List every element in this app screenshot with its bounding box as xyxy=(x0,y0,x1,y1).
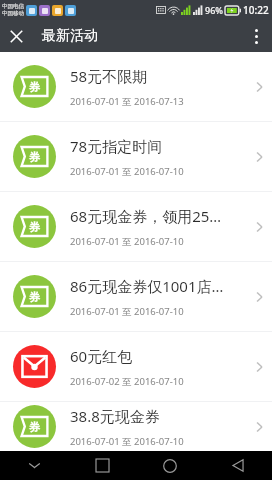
staticText: 58元不限期 xyxy=(70,66,148,86)
staticText: 券 xyxy=(29,150,40,164)
staticText: 68元现金券，领用25… xyxy=(70,206,222,226)
staticText: 2016-07-02 至 2016-07-10 xyxy=(70,375,184,388)
staticText: 2016-07-01 至 2016-07-10 xyxy=(70,165,184,178)
button[interactable]: 60元红包 xyxy=(0,332,272,401)
button[interactable]: Close xyxy=(0,20,32,52)
staticText: 最新活动 xyxy=(42,27,98,45)
staticText: 2016-07-01 至 2016-07-10 xyxy=(70,435,184,448)
staticText: 96% xyxy=(205,4,223,16)
button[interactable]: 券 xyxy=(0,262,272,331)
button[interactable]: More options xyxy=(240,20,272,52)
staticText: 60元红包 xyxy=(70,346,133,366)
staticText: 86元现金券仅1001店… xyxy=(70,276,224,296)
button[interactable]: 券 xyxy=(0,402,272,451)
staticText: 券 xyxy=(29,80,40,94)
staticText: 2016-07-01 至 2016-07-10 xyxy=(70,305,184,318)
button[interactable]: 券 xyxy=(0,122,272,191)
button[interactable]: 券 xyxy=(0,52,272,121)
staticText: 10:22 xyxy=(243,3,269,17)
button[interactable]: Home xyxy=(136,451,204,480)
staticText: 中国移动 xyxy=(2,10,24,17)
staticText: 2016-07-01 至 2016-07-10 xyxy=(70,235,184,248)
button[interactable]: Hide keyboard xyxy=(0,451,68,480)
button[interactable]: Back xyxy=(204,451,272,480)
staticText: 38.8元现金券 xyxy=(70,406,160,426)
staticText: 券 xyxy=(29,420,40,434)
staticText: 2016-07-01 至 2016-07-13 xyxy=(70,95,184,108)
button[interactable]: 券 xyxy=(0,192,272,261)
staticText: 券 xyxy=(29,220,40,234)
button[interactable]: Recent apps xyxy=(68,451,136,480)
staticText: 78元指定时间 xyxy=(70,136,163,156)
staticText: 中国电信 xyxy=(2,3,24,10)
staticText: 券 xyxy=(29,290,40,304)
